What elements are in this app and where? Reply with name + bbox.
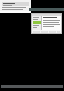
button[interactable] xyxy=(0,0,31,13)
button[interactable]: Dialog action xyxy=(32,14,61,33)
